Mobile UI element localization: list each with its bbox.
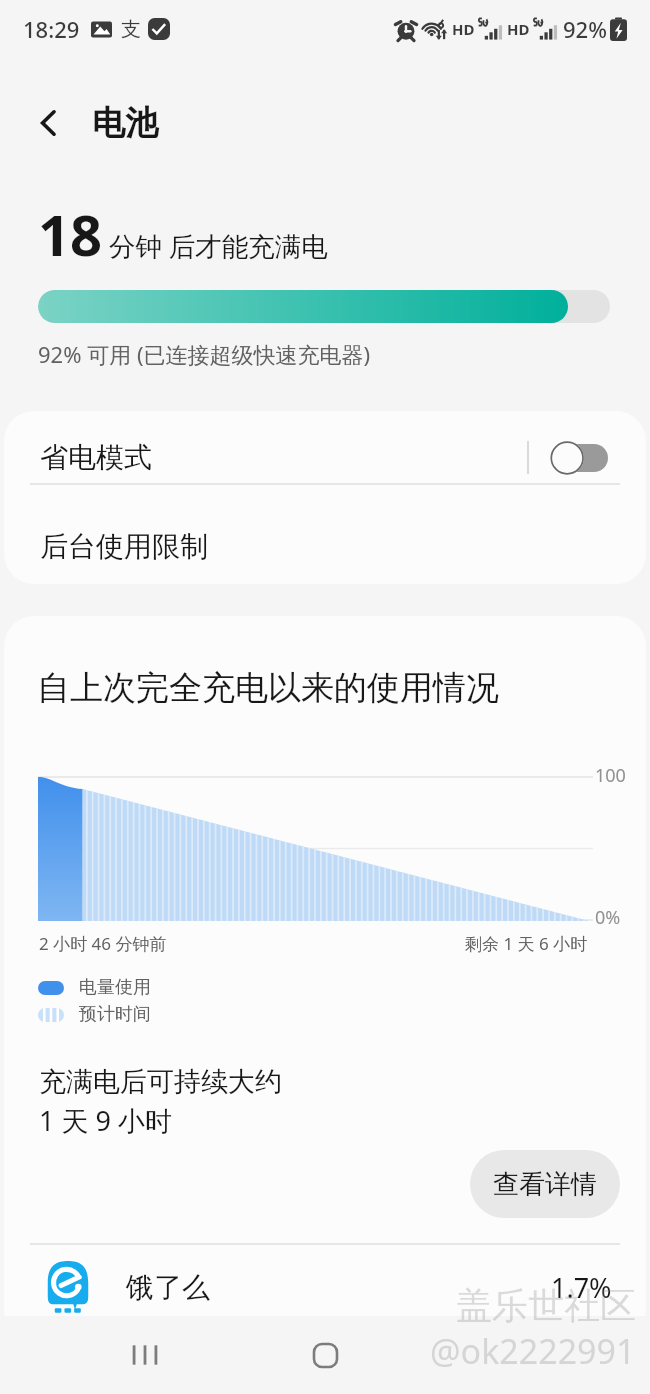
staticText: 2 小时 46 分钟前 <box>39 932 167 955</box>
staticText: 预计时间 <box>79 1003 151 1026</box>
staticText: 1 天 9 小时 <box>39 1102 172 1139</box>
button[interactable]: Recent apps <box>110 1320 180 1390</box>
staticText: 剩余 1 天 6 小时 <box>465 932 588 955</box>
button[interactable]: 饿了么 <box>4 1245 646 1340</box>
button[interactable]: Back <box>470 1320 540 1390</box>
button[interactable]: Back <box>26 100 72 146</box>
staticText: 查看详情 <box>493 1168 597 1201</box>
button[interactable]: 后台使用限制 <box>4 485 646 584</box>
staticText: @ok2222991 <box>430 1328 636 1374</box>
staticText: 92% 可用 (已连接超级快速充电器) <box>38 339 371 369</box>
button[interactable]: Home <box>290 1320 360 1390</box>
staticText: 后台使用限制 <box>40 529 208 564</box>
staticText: 0% <box>595 905 621 930</box>
staticText: 100 <box>595 763 626 788</box>
staticText: 18:29 <box>23 14 80 44</box>
staticText: 饿了么 <box>126 1270 210 1305</box>
staticText: 92% <box>563 14 607 44</box>
staticText: HD <box>507 19 530 39</box>
button[interactable]: 省电模式 <box>4 411 646 483</box>
staticText: 电量使用 <box>79 976 151 999</box>
staticText: 18 分钟 后才能充满电 <box>38 196 328 272</box>
staticText: 充满电后可持续大约 <box>39 1065 282 1099</box>
button[interactable]: Power saving mode toggle <box>550 441 608 475</box>
staticText: 1.7% <box>551 1269 612 1306</box>
staticText: 省电模式 <box>40 440 152 475</box>
button[interactable]: 查看详情 <box>470 1150 620 1218</box>
staticText: 盖乐世社区 <box>456 1283 636 1328</box>
staticText: HD <box>452 19 475 39</box>
staticText: 支 <box>121 17 141 42</box>
staticText: 自上次完全充电以来的使用情况 <box>37 667 499 709</box>
staticText: 电池 <box>92 102 158 144</box>
